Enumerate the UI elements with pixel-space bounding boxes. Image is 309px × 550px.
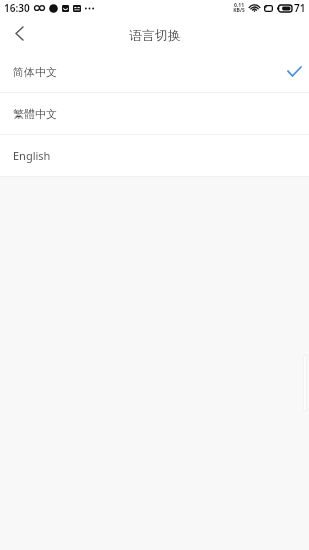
button[interactable]: English <box>0 135 309 176</box>
button[interactable]: 繁體中文 <box>0 93 309 134</box>
staticText: 语言切换 <box>129 27 181 43</box>
staticText: English <box>13 148 51 163</box>
button[interactable]: 简体中文 <box>0 51 309 92</box>
staticText: 繁體中文 <box>13 107 57 121</box>
button[interactable]: Back <box>0 18 38 51</box>
staticText: 0.11 KB/S <box>233 2 245 14</box>
staticText: 简体中文 <box>13 65 57 79</box>
staticText: 16:30 <box>4 1 30 15</box>
staticText: 71 <box>294 1 306 15</box>
